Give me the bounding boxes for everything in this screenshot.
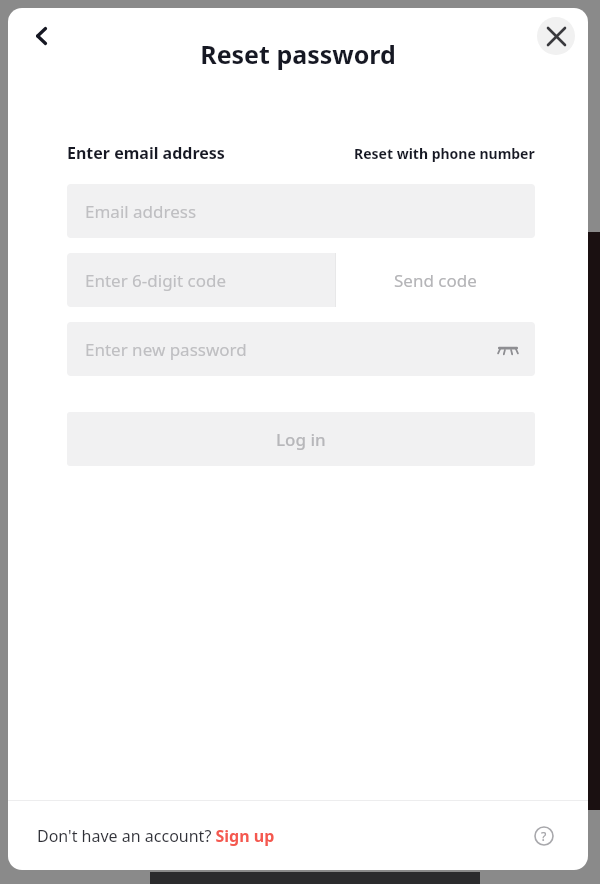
button[interactable]: Help [526,818,562,854]
button[interactable]: Enter new password [67,322,535,376]
staticText: Don't have an account? Sign up [37,825,275,847]
button[interactable]: Back [18,12,66,60]
button[interactable]: Send code [335,253,535,307]
staticText: ? [541,828,547,844]
staticText: Enter email address [67,142,225,164]
button[interactable]: Email address [67,184,535,238]
button[interactable]: Enter 6-digit code [67,253,335,307]
button[interactable]: Show password [491,332,525,366]
staticText: Send code [394,269,477,292]
staticText: Enter 6-digit code [85,269,227,292]
button[interactable]: Close [537,17,575,55]
button[interactable]: Reset with phone number [354,144,535,163]
staticText: Log in [276,428,326,451]
button[interactable]: Don't have an account? Sign up [37,825,275,847]
staticText: Reset password [8,37,588,71]
staticText: Enter new password [85,338,247,361]
button[interactable]: Log in [67,412,535,466]
staticText: Reset with phone number [354,144,535,163]
staticText: Email address [85,200,197,223]
